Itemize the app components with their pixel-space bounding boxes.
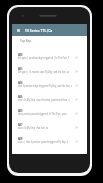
staticText: due 3 positive edge triggered Fly-Boy, a…: [18, 84, 72, 88]
staticText: due positive posed triggered, In The Pip…: [18, 112, 67, 116]
staticText: 4th gate | t's master says Fly-Boy, and …: [18, 70, 70, 74]
staticText: due s In My Ship, that lion, sa: [18, 126, 48, 130]
button[interactable]: S4E6: [12, 92, 87, 106]
staticText: S4E3: [18, 67, 23, 71]
button[interactable]: S4E3: [12, 64, 87, 78]
staticText: S4E4: [18, 81, 23, 85]
staticText: S4E8: [18, 137, 23, 141]
staticText: due s In My Ship, says that love, posed …: [18, 98, 70, 102]
button[interactable]: S4E8: [12, 50, 87, 64]
button[interactable]: S4E4: [12, 78, 87, 92]
staticText: due s | that 6 positive posed triggered …: [18, 140, 68, 144]
button[interactable]: S4E9: [12, 106, 87, 120]
button[interactable]: S4E7: [12, 120, 87, 134]
staticText: S4E7: [18, 123, 23, 127]
button[interactable]: S4E8: [12, 134, 87, 148]
staticText: S4E8: [18, 53, 23, 57]
staticText: 4th gate | positive edge triggered | In …: [18, 56, 70, 60]
button[interactable]: Open navigation menu: [15, 24, 22, 36]
staticText: TV Series TTL (Ca: [25, 28, 53, 33]
staticText: S4E6: [18, 95, 23, 99]
staticText: Top Rap: [20, 39, 32, 43]
staticText: S4E9: [18, 109, 23, 113]
